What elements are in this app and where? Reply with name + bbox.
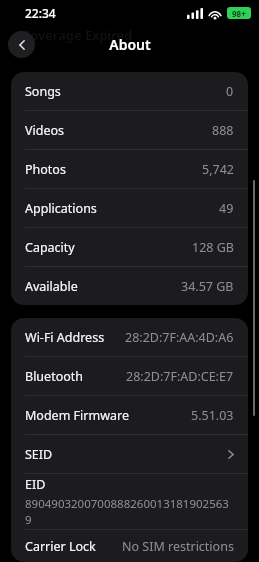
staticText: Applications [25,200,97,217]
button[interactable]: Capacity [11,228,248,266]
staticText: 49 [219,200,234,217]
staticText: About [109,35,151,54]
button[interactable]: EID [11,474,248,529]
staticText: Bluetooth [25,368,84,385]
staticText: No SIM restrictions [122,538,234,555]
button[interactable]: Back [8,31,35,58]
staticText: 98+ [232,8,246,19]
staticText: 5,742 [202,161,234,178]
button[interactable]: SEID [11,435,248,473]
button[interactable]: Available [11,267,248,305]
staticText: 28:2D:7F:AA:4D:A6 [125,329,234,346]
button[interactable]: Wi-Fi Address [11,318,248,356]
staticText: Videos [25,122,65,139]
staticText: 5.51.03 [191,407,234,424]
button[interactable]: Videos [11,111,248,149]
button[interactable]: Photos [11,150,248,188]
staticText: 34.57 GB [181,278,234,295]
staticText: Carrier Lock [25,538,96,555]
staticText: EID [25,476,46,493]
button[interactable]: Modem Firmware [11,396,248,434]
staticText: 888 [212,122,234,139]
staticText: Capacity [25,239,75,256]
staticText: 89049032007008882600131819025639 [25,496,234,528]
staticText: 128 GB [192,239,234,256]
staticText: 28:2D:7F:AD:CE:E7 [126,368,234,385]
staticText: Photos [25,161,66,178]
staticText: 22:34 [25,5,56,21]
button[interactable]: Bluetooth [11,357,248,395]
staticText: Modem Firmware [25,407,129,424]
button[interactable]: Songs [11,72,248,110]
staticText: Wi-Fi Address [25,329,105,346]
button[interactable]: Applications [11,189,248,227]
staticText: 0 [226,83,234,100]
button[interactable]: Carrier Lock [11,530,248,562]
staticText: SEID [25,446,53,463]
staticText: Songs [25,83,61,100]
staticText: Available [25,278,78,295]
staticText: Coverage Expired [22,26,133,44]
